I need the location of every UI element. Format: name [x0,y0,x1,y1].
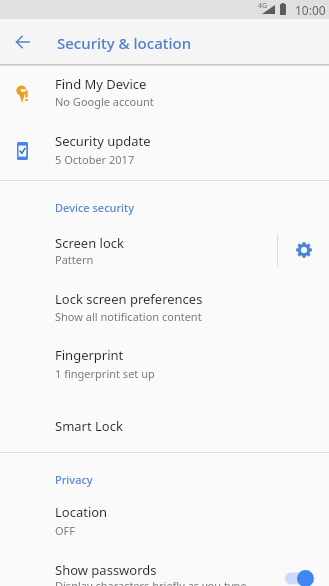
staticText: Find My Device [55,75,147,93]
button[interactable]: Show passwords toggle [285,570,314,586]
staticText: Security & location [57,33,192,53]
staticText: No Google account [55,94,154,109]
button[interactable] [0,495,329,547]
staticText: Security update [55,132,151,150]
staticText: Smart Lock [55,417,123,435]
staticText: 1 fingerprint set up [55,366,155,381]
staticText: 10:00 [295,2,326,18]
button[interactable] [0,338,329,390]
staticText: Device security [55,200,135,215]
staticText: OFF [55,523,76,538]
button[interactable]: Navigate up [8,27,37,56]
button[interactable] [0,281,329,333]
staticText: Show all notification content [55,309,202,324]
staticText: 4G [258,1,268,11]
staticText: Display characters briefly as you type [55,578,247,586]
staticText: 5 October 2017 [55,152,135,167]
button[interactable] [0,404,329,448]
staticText: Pattern [55,252,94,267]
button[interactable]: Screen lock settings [287,233,320,266]
staticText: Fingerprint [55,346,124,364]
staticText: Screen lock [55,234,124,252]
button[interactable] [0,66,329,118]
staticText: Show passwords [55,561,157,579]
button[interactable] [0,225,329,277]
button[interactable] [0,123,329,175]
button[interactable] [0,552,329,586]
staticText: Location [55,503,108,521]
staticText: Lock screen preferences [55,290,203,308]
staticText: Privacy [55,472,93,487]
